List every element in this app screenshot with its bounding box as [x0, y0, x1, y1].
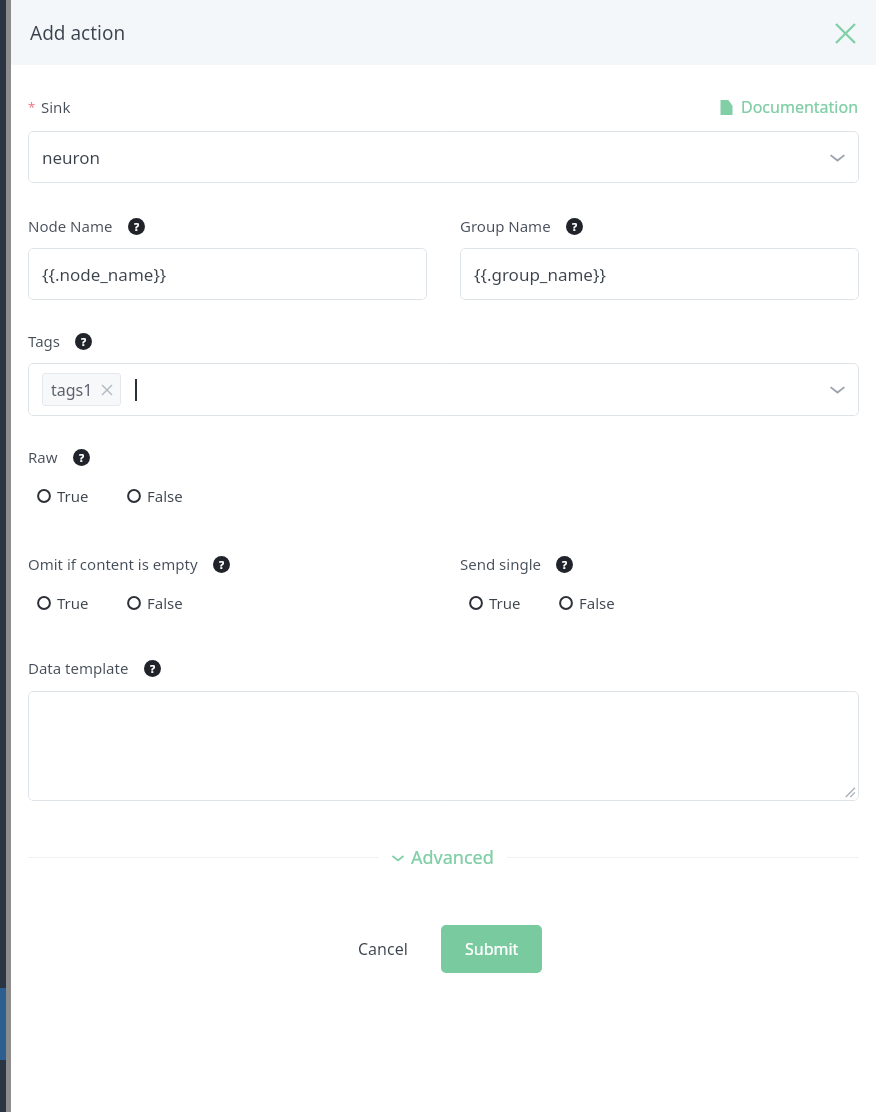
- button[interactable]: {{.node_name}}: [28, 248, 427, 300]
- button[interactable]: Help: [213, 556, 230, 573]
- staticText: tags1: [51, 379, 93, 401]
- staticText: ?: [562, 557, 568, 572]
- button[interactable]: True: [37, 486, 89, 506]
- button[interactable]: Help: [556, 556, 573, 573]
- staticText: False: [147, 593, 183, 613]
- staticText: Sink: [41, 97, 71, 117]
- staticText: True: [489, 593, 521, 613]
- button[interactable]: tags1: [42, 373, 121, 406]
- button[interactable]: Submit: [441, 925, 542, 973]
- staticText: Tags: [28, 331, 60, 351]
- button[interactable]: False: [559, 593, 615, 613]
- staticText: Data template: [28, 658, 129, 678]
- button[interactable]: Documentation: [719, 96, 859, 118]
- staticText: True: [57, 593, 89, 613]
- button[interactable]: True: [469, 593, 521, 613]
- staticText: ?: [134, 219, 140, 234]
- staticText: ?: [79, 450, 85, 465]
- staticText: neuron: [42, 146, 101, 169]
- button[interactable]: False: [127, 486, 183, 506]
- button[interactable]: Help: [73, 449, 90, 466]
- button[interactable]: Help: [566, 218, 583, 235]
- button[interactable]: [28, 691, 859, 801]
- staticText: Raw: [28, 447, 58, 467]
- staticText: False: [579, 593, 615, 613]
- staticText: ?: [219, 557, 225, 572]
- staticText: Group Name: [460, 216, 551, 236]
- button[interactable]: False: [127, 593, 183, 613]
- staticText: {{.group_name}}: [474, 263, 606, 286]
- button[interactable]: neuron: [28, 131, 859, 183]
- staticText: Add action: [30, 20, 126, 46]
- button[interactable]: Help: [75, 333, 92, 350]
- button[interactable]: Close: [826, 14, 864, 52]
- staticText: Documentation: [741, 96, 859, 118]
- staticText: ?: [81, 334, 87, 349]
- staticText: ?: [572, 219, 578, 234]
- staticText: Cancel: [358, 938, 408, 960]
- button[interactable]: Advanced: [379, 845, 507, 870]
- button[interactable]: tags1: [28, 363, 859, 416]
- button[interactable]: True: [37, 593, 89, 613]
- staticText: Omit if content is empty: [28, 554, 198, 574]
- staticText: Send single: [460, 554, 541, 574]
- button[interactable]: Help: [128, 218, 145, 235]
- staticText: {{.node_name}}: [42, 263, 167, 286]
- staticText: False: [147, 486, 183, 506]
- staticText: Advanced: [411, 845, 494, 870]
- button[interactable]: {{.group_name}}: [460, 248, 859, 300]
- button[interactable]: Help: [144, 660, 161, 677]
- staticText: Submit: [465, 938, 519, 960]
- staticText: ?: [150, 661, 156, 676]
- staticText: *: [28, 98, 36, 116]
- button[interactable]: Cancel: [345, 929, 421, 969]
- staticText: True: [57, 486, 89, 506]
- staticText: Node Name: [28, 216, 113, 236]
